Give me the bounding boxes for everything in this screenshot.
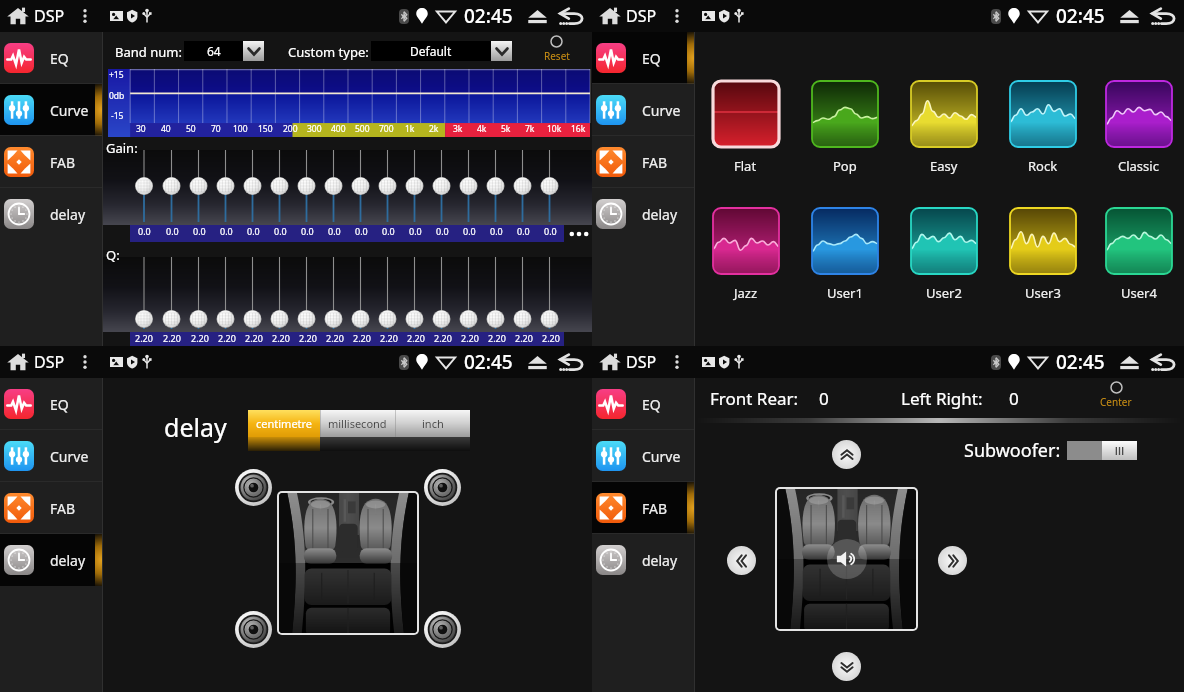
staticText: FAB <box>642 499 668 518</box>
staticText: 1k <box>405 123 415 135</box>
staticText: 0 <box>819 387 829 410</box>
staticText: 16k <box>571 123 586 135</box>
button[interactable]: Curve <box>0 430 103 482</box>
staticText: 0.0 <box>382 225 395 237</box>
staticText: 2.20 <box>542 332 560 344</box>
button[interactable]: FAB <box>0 482 103 534</box>
button[interactable]: EQ <box>0 378 103 430</box>
button[interactable]: User2 <box>894 208 993 302</box>
staticText: Gain: <box>106 139 138 157</box>
button[interactable]: More options <box>670 6 684 26</box>
staticText: 0.0 <box>138 225 151 237</box>
button[interactable]: Back <box>1150 6 1177 26</box>
button[interactable]: More options <box>670 352 684 372</box>
staticText: 100 <box>233 123 248 135</box>
button[interactable]: Back <box>558 352 585 372</box>
button[interactable]: Back <box>558 6 585 26</box>
button[interactable]: FAB <box>592 482 695 534</box>
button[interactable]: delay <box>0 188 103 240</box>
button[interactable]: Rock <box>993 81 1092 175</box>
button[interactable]: Reset <box>538 35 575 63</box>
button[interactable]: Eject <box>1117 353 1142 371</box>
button[interactable]: Speaker <box>235 611 272 648</box>
staticText: Classic <box>1118 157 1159 175</box>
button[interactable]: millisecond <box>320 410 395 437</box>
button[interactable]: Curve <box>592 430 695 482</box>
button[interactable]: Pop <box>795 81 894 175</box>
button[interactable]: Front <box>832 440 861 469</box>
button[interactable]: User4 <box>1092 208 1184 302</box>
button[interactable]: Home <box>599 5 621 27</box>
button[interactable]: Speaker <box>235 469 272 506</box>
button[interactable]: Flat <box>696 81 795 175</box>
button[interactable]: Curve <box>592 84 695 136</box>
button[interactable]: delay <box>592 534 695 586</box>
staticText: 02:45 <box>464 3 513 29</box>
staticText: 0.0 <box>517 225 530 237</box>
button[interactable]: inch <box>395 410 470 437</box>
button[interactable]: Center <box>1094 381 1138 409</box>
staticText: 2k <box>429 123 439 135</box>
button[interactable]: centimetre <box>248 410 320 437</box>
staticText: 70 <box>211 123 221 135</box>
button[interactable]: Back <box>1150 352 1177 372</box>
button[interactable]: EQ <box>592 32 695 84</box>
staticText: 0.0 <box>166 225 179 237</box>
staticText: delay <box>642 205 678 224</box>
button[interactable]: Default <box>371 41 512 61</box>
button[interactable]: User1 <box>795 208 894 302</box>
staticText: User2 <box>926 284 962 302</box>
staticText: centimetre <box>256 416 313 431</box>
staticText: 02:45 <box>1056 3 1105 29</box>
staticText: EQ <box>50 49 69 68</box>
button[interactable]: EQ <box>0 32 103 84</box>
button[interactable]: Easy <box>894 81 993 175</box>
button[interactable]: delay <box>592 188 695 240</box>
button[interactable]: Subwoofer toggle <box>1067 441 1137 460</box>
staticText: EQ <box>642 49 661 68</box>
button[interactable]: delay <box>0 534 103 586</box>
button[interactable]: Curve <box>0 84 103 136</box>
staticText: DSP <box>626 5 657 27</box>
button[interactable]: Home <box>7 5 29 27</box>
staticText: FAB <box>642 153 668 172</box>
button[interactable]: Eject <box>525 7 550 25</box>
staticText: delay <box>50 551 86 570</box>
button[interactable]: Speaker <box>424 469 461 506</box>
staticText: 3k <box>453 123 463 135</box>
button[interactable]: Home <box>7 351 29 373</box>
button[interactable]: More options <box>78 6 92 26</box>
button[interactable]: Right <box>938 546 967 575</box>
staticText: 40 <box>161 123 171 135</box>
staticText: Center <box>1100 395 1132 409</box>
button[interactable]: Speaker center <box>827 539 867 579</box>
staticText: Rock <box>1028 157 1058 175</box>
staticText: delay <box>642 551 678 570</box>
button[interactable]: Classic <box>1092 81 1184 175</box>
staticText: +15 <box>109 69 124 81</box>
button[interactable]: Eject <box>525 353 550 371</box>
button[interactable]: Home <box>599 351 621 373</box>
button[interactable]: EQ <box>592 378 695 430</box>
button[interactable]: User3 <box>993 208 1092 302</box>
staticText: inch <box>422 416 444 431</box>
staticText: EQ <box>642 395 661 414</box>
staticText: 10k <box>547 123 562 135</box>
staticText: 2.20 <box>488 332 506 344</box>
staticText: Easy <box>930 157 958 175</box>
button[interactable]: Jazz <box>696 208 795 302</box>
staticText: 700 <box>379 123 394 135</box>
staticText: FAB <box>50 499 76 518</box>
staticText: 2.20 <box>461 332 479 344</box>
button[interactable]: Left <box>727 546 756 575</box>
staticText: User1 <box>827 284 863 302</box>
staticText: 2.20 <box>380 332 398 344</box>
button[interactable]: FAB <box>0 136 103 188</box>
button[interactable]: More options <box>78 352 92 372</box>
staticText: 0.0 <box>274 225 287 237</box>
button[interactable]: Speaker <box>424 611 461 648</box>
button[interactable]: FAB <box>592 136 695 188</box>
button[interactable]: Rear <box>832 652 861 681</box>
button[interactable]: Eject <box>1117 7 1142 25</box>
button[interactable]: 64 <box>184 41 264 61</box>
